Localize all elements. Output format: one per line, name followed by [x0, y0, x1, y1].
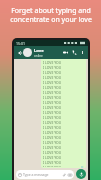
staticText: I LOVE YOU — [43, 140, 62, 145]
staticText: I LOVE YOU — [43, 65, 62, 70]
button[interactable]: Record voice message — [76, 169, 86, 179]
staticText: I LOVE YOU — [43, 95, 62, 100]
button[interactable]: Type a message — [16, 170, 74, 179]
staticText: Type a message — [23, 172, 49, 177]
staticText: Forget about typing and concentrate on y… — [10, 6, 92, 24]
staticText: I LOVE YOU — [43, 75, 62, 80]
staticText: I LOVE YOU — [43, 85, 62, 90]
staticText: I LOVE YOU — [43, 150, 62, 155]
staticText: online — [34, 54, 43, 58]
staticText: I LOVE YOU — [43, 120, 62, 125]
button[interactable]: Camera — [68, 173, 72, 177]
button[interactable]: Attach — [62, 173, 66, 177]
button[interactable]: Love — [34, 48, 61, 58]
button[interactable]: Voice call — [70, 48, 79, 57]
staticText: I LOVE YOU — [43, 115, 62, 120]
staticText: I LOVE YOU — [43, 125, 62, 130]
staticText: I LOVE YOU — [43, 135, 62, 140]
staticText: I LOVE YOU — [43, 160, 62, 165]
staticText: I LOVE YOU — [43, 110, 62, 115]
staticText: I LOVE YOU — [43, 70, 62, 75]
staticText: 15:01 — [16, 41, 25, 46]
staticText: I LOVE YOU — [43, 155, 62, 160]
staticText: I LOVE YOU — [43, 145, 62, 150]
button[interactable] — [23, 48, 32, 57]
staticText: I LOVE YOU — [43, 80, 62, 85]
staticText: I LOVE YOU — [43, 105, 62, 110]
staticText: I LOVE YOU — [43, 165, 62, 167]
staticText: I LOVE YOU — [43, 90, 62, 95]
button[interactable]: Video call — [61, 48, 70, 57]
staticText: I LOVE YOU — [43, 130, 62, 135]
staticText: I LOVE YOU — [43, 100, 62, 105]
button[interactable]: I LOVE YOU — [41, 59, 86, 168]
button[interactable]: More options — [79, 49, 86, 56]
button[interactable]: Back — [16, 49, 23, 56]
staticText: I LOVE YOU — [43, 60, 62, 65]
staticText: Love — [34, 48, 44, 54]
